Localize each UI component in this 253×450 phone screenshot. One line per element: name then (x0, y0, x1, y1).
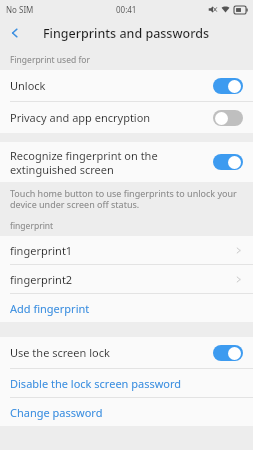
staticText: Unlock (10, 78, 207, 93)
staticText: fingerprint1 (10, 243, 234, 258)
staticText: Change password (10, 405, 103, 420)
button[interactable]: Recognize fingerprint on the extinguishe… (0, 142, 253, 182)
button[interactable]: Privacy and app encryption (0, 102, 253, 133)
staticText: Add fingerprint (10, 301, 90, 316)
button[interactable]: fingerprint2 (0, 265, 253, 293)
button[interactable]: Add fingerprint (0, 294, 253, 322)
button[interactable]: Use the screen lock (0, 337, 253, 368)
staticText: No SIM (6, 4, 34, 15)
staticText: Recognize fingerprint on the extinguishe… (10, 148, 207, 177)
staticText: 00:41 (116, 4, 137, 15)
staticText: Disable the lock screen password (10, 376, 182, 391)
button[interactable]: Back (0, 18, 30, 48)
staticText: Use the screen lock (10, 345, 207, 360)
staticText: Fingerprints and passwords (43, 25, 210, 42)
staticText: Privacy and app encryption (10, 110, 207, 125)
button[interactable]: Disable the lock screen password (0, 369, 253, 397)
staticText: fingerprint (10, 220, 54, 232)
staticText: Touch home button to use fingerprints to… (10, 187, 239, 211)
staticText: fingerprint2 (10, 272, 234, 287)
button[interactable]: fingerprint1 (0, 236, 253, 264)
staticText: Fingerprint used for (10, 54, 90, 66)
button[interactable]: Unlock (0, 70, 253, 101)
button[interactable]: Change password (0, 398, 253, 426)
